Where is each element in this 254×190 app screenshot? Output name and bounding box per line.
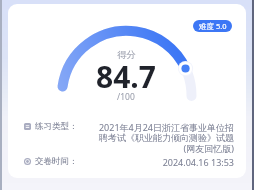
staticText: 2024.04.16 13:53 — [162, 156, 234, 168]
staticText: /100 — [117, 91, 135, 103]
staticText: 84.7 — [96, 56, 156, 97]
staticText: (网友回忆版) — [183, 142, 234, 154]
button[interactable]: 难度 5.0 — [193, 20, 232, 32]
staticText: 得分 — [117, 49, 136, 61]
staticText: 练习类型： — [35, 121, 78, 132]
staticText: 2021年4月24日浙江省事业单位招 — [98, 121, 234, 133]
staticText: 难度 5.0 — [199, 21, 227, 31]
staticText: 聘考试《职业能力倾向测验》试题 — [99, 132, 234, 143]
staticText: 交卷时间： — [35, 156, 78, 167]
